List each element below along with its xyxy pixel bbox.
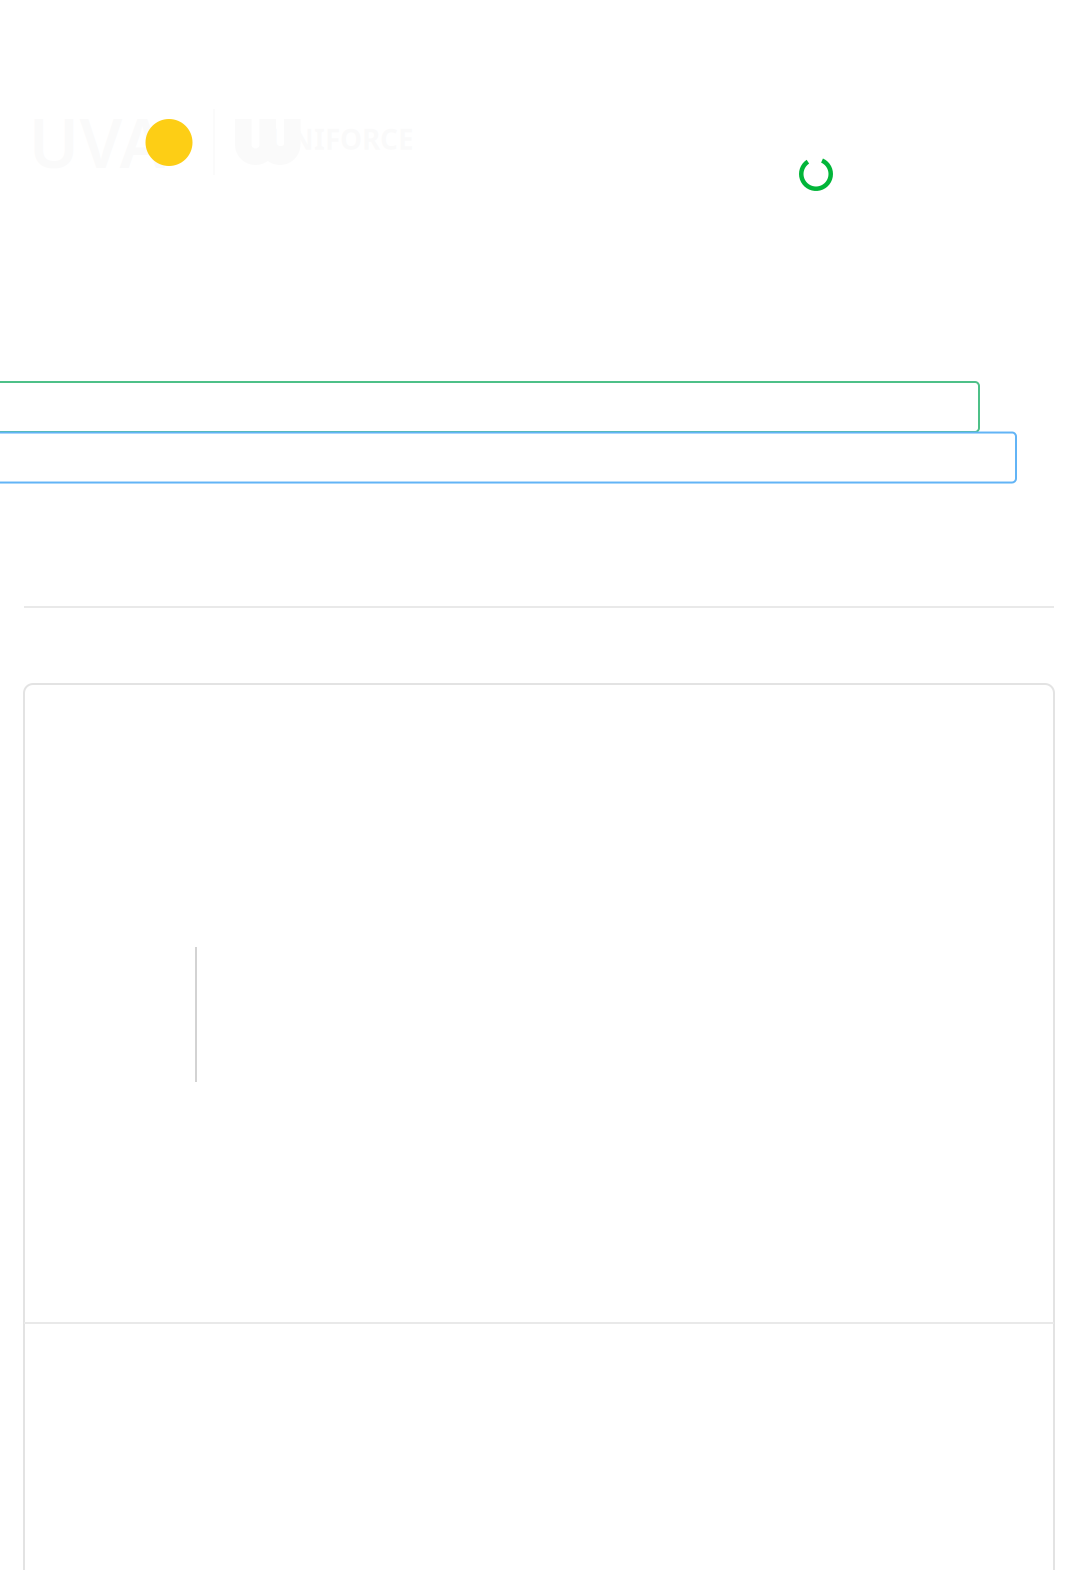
button[interactable]: UVA Uniforce home <box>20 97 440 187</box>
button[interactable]: Primary toolbar <box>0 382 979 432</box>
button[interactable]: Secondary toolbar <box>0 432 1016 482</box>
staticText: UVA <box>28 96 165 187</box>
